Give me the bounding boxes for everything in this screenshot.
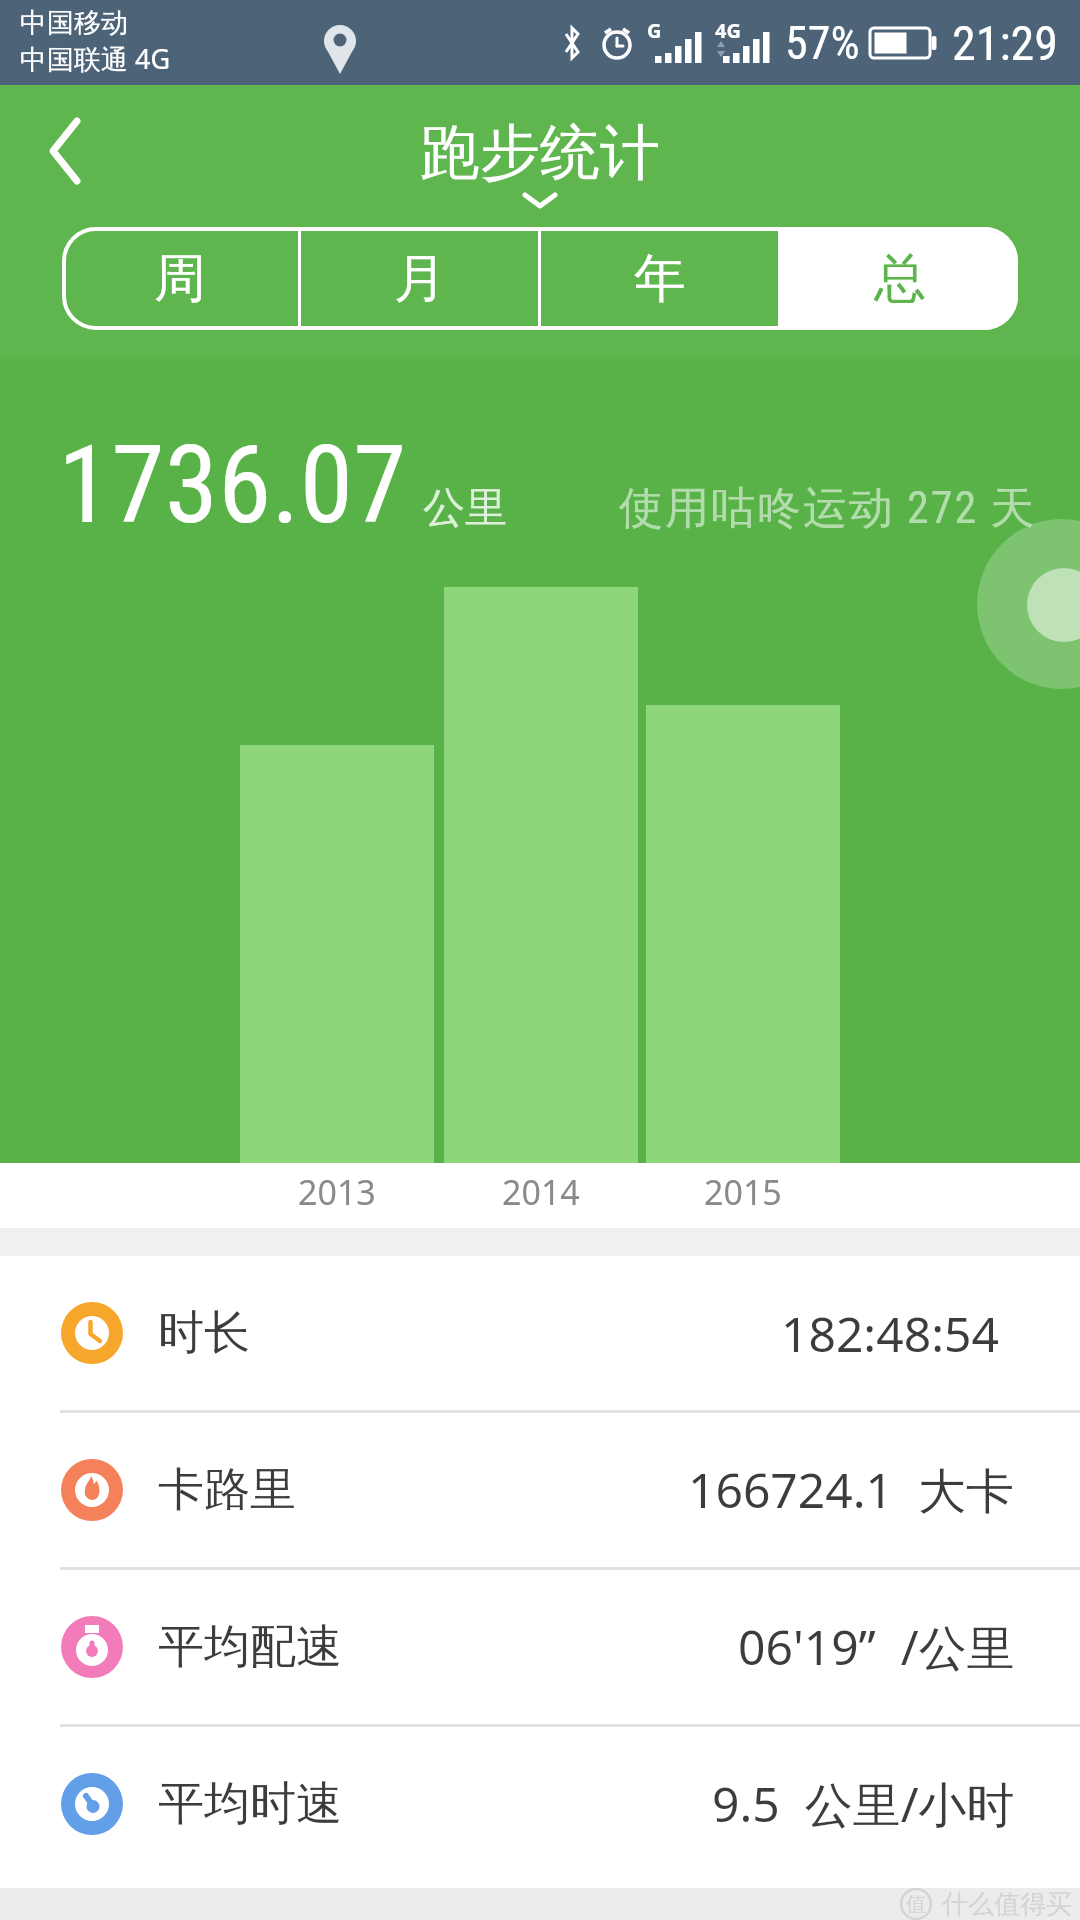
button[interactable]: 平均配速: [0, 1570, 1080, 1724]
staticText: 周: [154, 246, 206, 312]
button[interactable]: 平均时速: [0, 1727, 1080, 1881]
button[interactable]: 年: [541, 227, 778, 330]
staticText: 2013: [298, 1169, 376, 1215]
staticText: 什么值得买: [942, 1888, 1072, 1920]
staticText: 时长: [158, 1304, 250, 1362]
staticText: 中国移动: [20, 6, 128, 40]
staticText: 使用咕咚运动 272 天: [619, 481, 1037, 536]
staticText: 2014: [502, 1169, 580, 1215]
staticText: 卡路里: [158, 1461, 296, 1519]
staticText: 平均配速: [158, 1618, 342, 1676]
staticText: 2015: [704, 1169, 782, 1215]
staticText: 182:48:54: [781, 1301, 999, 1366]
staticText: 公里: [423, 482, 507, 535]
staticText: G: [647, 17, 662, 44]
staticText: 平均时速: [158, 1775, 342, 1833]
staticText: 值: [906, 1892, 926, 1917]
staticText: 年: [634, 246, 686, 312]
staticText: 月: [394, 246, 446, 312]
button[interactable]: 周: [62, 227, 298, 330]
staticText: 4G: [715, 17, 741, 44]
button[interactable]: [20, 97, 110, 207]
staticText: 57%: [785, 16, 860, 70]
button[interactable]: 总: [781, 227, 1018, 330]
button[interactable]: 时长: [0, 1256, 1080, 1410]
staticText: 跑步统计: [420, 115, 660, 191]
staticText: 中国联通 4G: [20, 40, 171, 77]
staticText: 1736.07: [58, 422, 407, 549]
button[interactable]: 月: [301, 227, 538, 330]
staticText: 9.5 公里/小时: [712, 1771, 1015, 1837]
staticText: 06'19” /公里: [738, 1614, 1015, 1680]
staticText: 总: [874, 246, 926, 312]
staticText: 21:29: [952, 15, 1058, 71]
staticText: 166724.1 大卡: [688, 1457, 1015, 1523]
button[interactable]: 卡路里: [0, 1413, 1080, 1567]
